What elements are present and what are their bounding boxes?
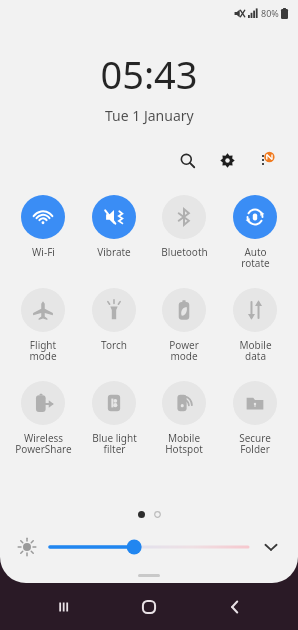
- button[interactable]: Recents: [42, 585, 86, 629]
- button[interactable]: Mobile Hotspot: [151, 379, 217, 458]
- staticText: Blue light filter: [92, 431, 137, 456]
- button[interactable]: Search: [172, 145, 202, 175]
- staticText: Torch: [101, 338, 127, 352]
- staticText: Wireless PowerShare: [15, 431, 72, 456]
- button[interactable]: Brightness: [12, 532, 42, 562]
- button[interactable]: Auto rotate: [222, 193, 288, 272]
- staticText: 05:43: [100, 48, 198, 100]
- button[interactable]: Torch: [81, 286, 147, 354]
- button[interactable]: Vibrate: [81, 193, 147, 261]
- staticText: Vibrate: [97, 245, 131, 259]
- button[interactable]: Blue light filter: [81, 379, 147, 458]
- staticText: Flight mode: [29, 338, 57, 363]
- button[interactable]: Home: [127, 585, 171, 629]
- button[interactable]: Bluetooth: [151, 193, 217, 261]
- button[interactable]: Back: [213, 585, 257, 629]
- button[interactable]: Power mode: [151, 286, 217, 365]
- staticText: Power mode: [169, 338, 199, 363]
- button[interactable]: More options: [252, 145, 282, 175]
- button[interactable]: Expand brightness settings: [256, 532, 286, 562]
- button[interactable]: Settings: [212, 145, 242, 175]
- staticText: Mobile data: [239, 338, 272, 363]
- staticText: Secure Folder: [239, 431, 271, 456]
- staticText: Mobile Hotspot: [165, 431, 203, 456]
- button[interactable]: Wi-Fi: [10, 193, 76, 261]
- staticText: Wi-Fi: [32, 245, 55, 259]
- button[interactable]: [50, 534, 248, 560]
- staticText: Auto rotate: [241, 245, 270, 270]
- button[interactable]: Secure Folder: [222, 379, 288, 458]
- staticText: 80%: [261, 7, 279, 19]
- staticText: Bluetooth: [161, 245, 208, 259]
- button[interactable]: Flight mode: [10, 286, 76, 365]
- staticText: Tue 1 January: [105, 106, 194, 125]
- button[interactable]: Wireless PowerShare: [10, 379, 76, 458]
- button[interactable]: Mobile data: [222, 286, 288, 365]
